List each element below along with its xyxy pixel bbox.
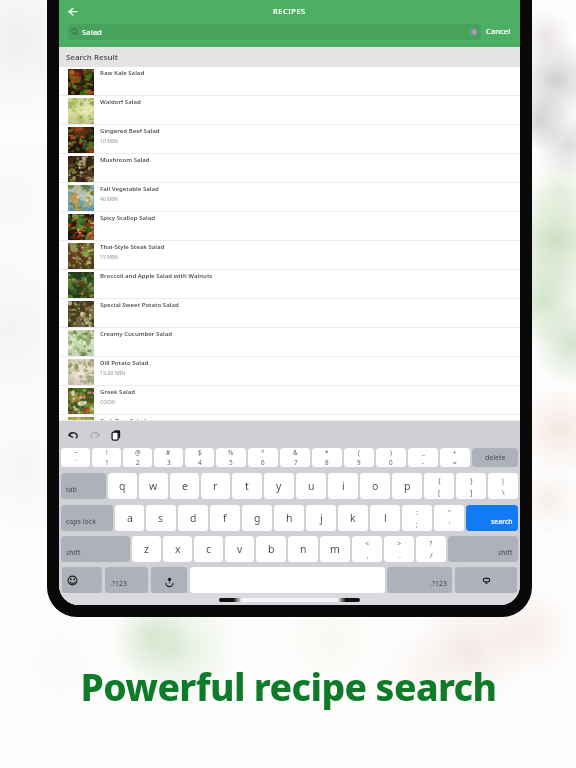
staticText: $ bbox=[198, 448, 202, 457]
button[interactable]: ! bbox=[92, 448, 121, 467]
button[interactable]: % bbox=[216, 448, 246, 467]
button[interactable]: < bbox=[352, 536, 382, 562]
staticText: o bbox=[372, 479, 379, 493]
staticText: Gingered Beef Salad bbox=[100, 127, 160, 135]
button[interactable]: Fall Vegetable Salad bbox=[59, 183, 520, 212]
button[interactable]: .?123 bbox=[105, 567, 148, 593]
button[interactable]: Salad bbox=[68, 24, 481, 40]
button[interactable]: v bbox=[225, 536, 254, 562]
button[interactable]: Gingered Beef Salad bbox=[59, 125, 520, 154]
button[interactable]: Mushroom Salad bbox=[59, 154, 520, 183]
button[interactable]: { bbox=[424, 473, 454, 499]
button[interactable]: i bbox=[328, 473, 358, 499]
button[interactable]: ( bbox=[344, 448, 374, 467]
button[interactable]: d bbox=[178, 505, 208, 531]
button[interactable]: f bbox=[210, 505, 240, 531]
button[interactable]: j bbox=[306, 505, 336, 531]
button[interactable]: : bbox=[402, 505, 432, 531]
button[interactable]: ^ bbox=[248, 448, 278, 467]
staticText: Fall Vegetable Salad bbox=[100, 185, 159, 193]
staticText: b bbox=[268, 542, 275, 556]
staticText: ( bbox=[358, 448, 360, 457]
button[interactable]: Redo bbox=[88, 428, 102, 442]
staticText: g bbox=[254, 511, 261, 525]
button[interactable]: .?123 bbox=[387, 567, 452, 593]
button[interactable]: z bbox=[132, 536, 161, 562]
button[interactable]: Back bbox=[65, 5, 79, 19]
button[interactable]: ? bbox=[416, 536, 446, 562]
staticText: c bbox=[206, 542, 212, 556]
button[interactable]: # bbox=[154, 448, 183, 467]
button[interactable]: & bbox=[280, 448, 310, 467]
button[interactable]: | bbox=[488, 473, 518, 499]
staticText: tab bbox=[66, 485, 77, 495]
staticText: 0 bbox=[389, 458, 393, 467]
button[interactable]: w bbox=[139, 473, 168, 499]
button[interactable]: o bbox=[360, 473, 390, 499]
button[interactable]: Dill Potato Salad bbox=[59, 357, 520, 386]
button[interactable]: Spicy Scallop Salad bbox=[59, 212, 520, 241]
button[interactable]: } bbox=[456, 473, 486, 499]
staticText: * bbox=[325, 448, 329, 457]
button[interactable]: Cancel bbox=[481, 23, 516, 40]
button[interactable]: Hide keyboard bbox=[455, 567, 517, 593]
button[interactable]: @ bbox=[123, 448, 152, 467]
staticText: u bbox=[308, 479, 315, 493]
button[interactable]: Creamy Cucumber Salad bbox=[59, 328, 520, 357]
staticText: \ bbox=[502, 487, 505, 497]
button[interactable]: t bbox=[232, 473, 262, 499]
button[interactable]: Emoji bbox=[62, 567, 102, 593]
button[interactable]: tab bbox=[61, 473, 106, 499]
button[interactable]: caps lock bbox=[61, 505, 113, 531]
button[interactable]: e bbox=[170, 473, 199, 499]
staticText: n bbox=[300, 542, 307, 556]
staticText: Cancel bbox=[486, 26, 511, 37]
button[interactable]: * bbox=[312, 448, 342, 467]
button[interactable]: Paste bbox=[109, 428, 123, 442]
button[interactable]: r bbox=[201, 473, 230, 499]
button[interactable]: " bbox=[434, 505, 464, 531]
button[interactable]: b bbox=[256, 536, 286, 562]
button[interactable]: y bbox=[264, 473, 294, 499]
button[interactable]: n bbox=[288, 536, 318, 562]
button[interactable]: k bbox=[338, 505, 368, 531]
button[interactable]: delete bbox=[472, 448, 518, 467]
button[interactable]: Raw Kale Salad bbox=[59, 67, 520, 96]
button[interactable]: ~ bbox=[61, 448, 90, 467]
button[interactable]: x bbox=[163, 536, 192, 562]
staticText: delete bbox=[485, 453, 506, 463]
button[interactable]: s bbox=[146, 505, 176, 531]
button[interactable]: shift bbox=[448, 536, 518, 562]
staticText: ` bbox=[75, 458, 77, 467]
button[interactable]: Thai-Style Steak Salad bbox=[59, 241, 520, 270]
button[interactable]: p bbox=[392, 473, 422, 499]
button[interactable]: Dictate bbox=[151, 567, 187, 593]
button[interactable]: g bbox=[242, 505, 272, 531]
button[interactable]: c bbox=[194, 536, 223, 562]
button[interactable]: l bbox=[370, 505, 400, 531]
button[interactable]: $ bbox=[185, 448, 214, 467]
button[interactable]: shift bbox=[61, 536, 130, 562]
staticText: _ bbox=[422, 448, 425, 457]
button[interactable]: q bbox=[108, 473, 137, 499]
button[interactable]: ) bbox=[376, 448, 406, 467]
button[interactable]: Waldorf Salad bbox=[59, 96, 520, 125]
button[interactable]: u bbox=[296, 473, 326, 499]
button[interactable]: a bbox=[115, 505, 144, 531]
button[interactable]: + bbox=[440, 448, 470, 467]
staticText: k bbox=[350, 511, 356, 525]
button[interactable]: search bbox=[466, 505, 518, 531]
button[interactable]: h bbox=[274, 505, 304, 531]
button[interactable]: Special Sweet Potato Salad bbox=[59, 299, 520, 328]
button[interactable]: Broccoli and Apple Salad with Walnuts bbox=[59, 270, 520, 299]
staticText: | bbox=[501, 475, 505, 485]
button[interactable]: Undo bbox=[66, 428, 80, 442]
button[interactable]: Greek Salad bbox=[59, 386, 520, 415]
button[interactable]: m bbox=[320, 536, 350, 562]
button[interactable]: _ bbox=[408, 448, 438, 467]
button[interactable]: > bbox=[384, 536, 414, 562]
staticText: Spicy Scallop Salad bbox=[100, 214, 156, 222]
staticText: Special Sweet Potato Salad bbox=[100, 301, 179, 309]
button[interactable]: Crab Taco Salad bbox=[59, 415, 520, 421]
